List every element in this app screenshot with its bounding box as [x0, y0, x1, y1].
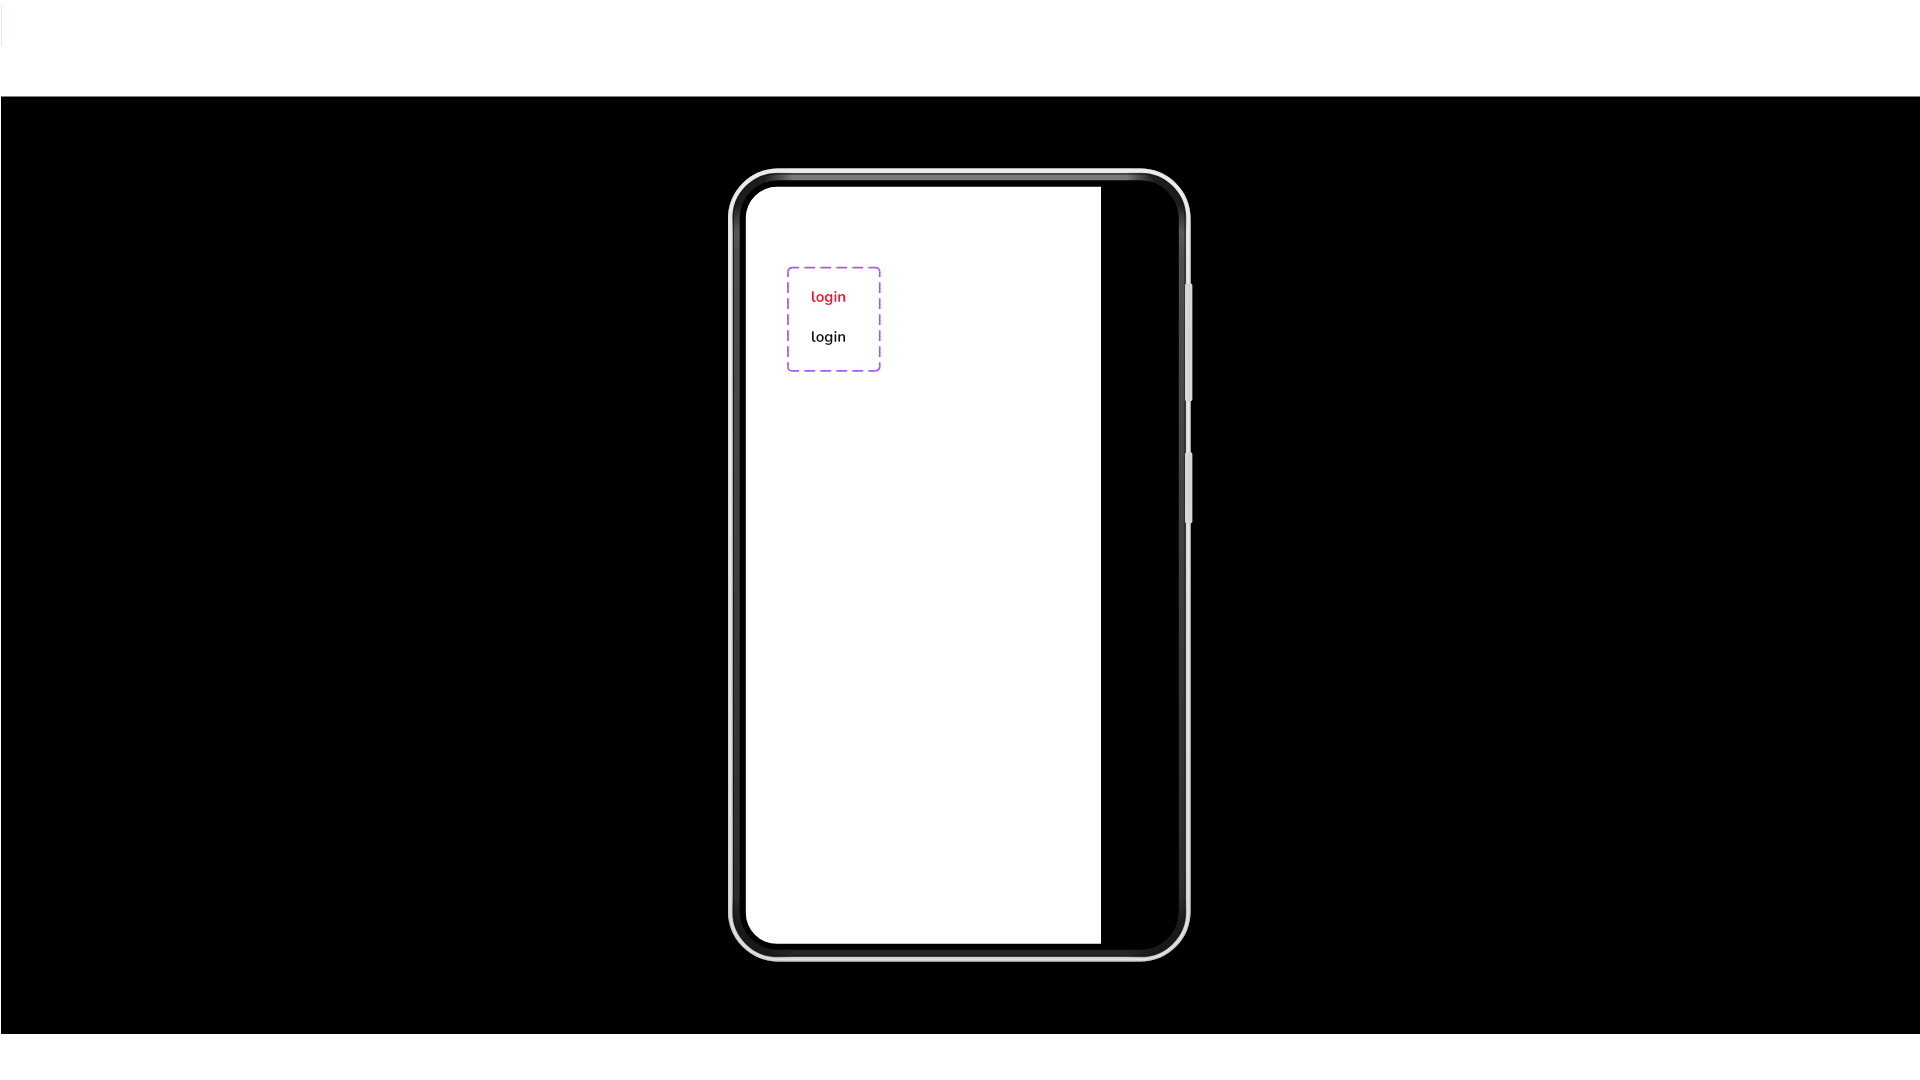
- staticText: login: [811, 327, 847, 347]
- staticText: login: [811, 287, 847, 307]
- button[interactable]: login placeholder: [788, 268, 880, 371]
